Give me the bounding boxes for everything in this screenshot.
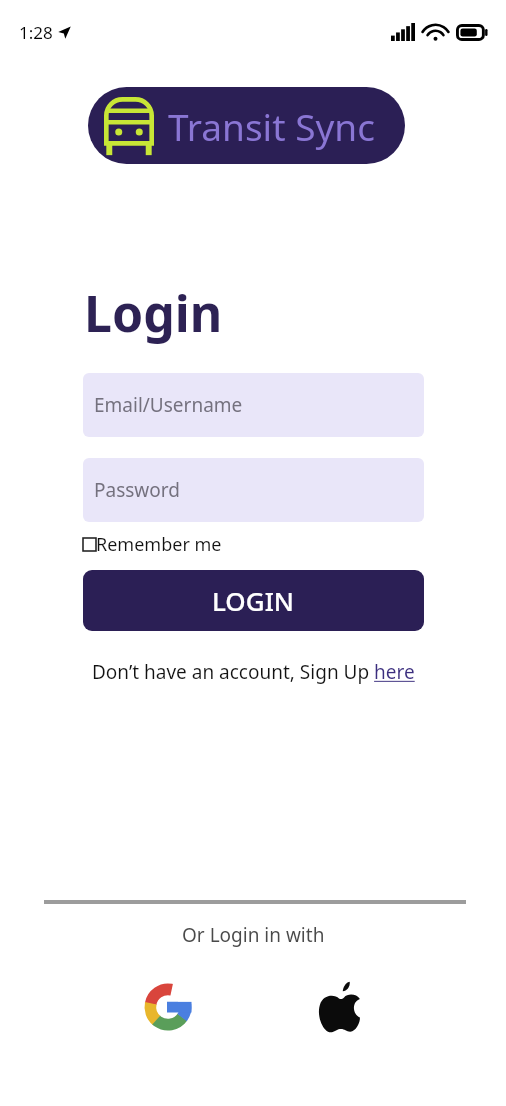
button[interactable]: Email/Username (83, 373, 424, 437)
staticText: Email/Username (94, 392, 243, 418)
button[interactable]: LOGIN (83, 570, 424, 631)
button[interactable]: Sign in with Google (131, 970, 205, 1044)
staticText: Transit Sync (168, 101, 375, 151)
staticText: Password (94, 477, 180, 503)
button[interactable]: Password (83, 458, 424, 522)
button[interactable]: Remember me (83, 532, 222, 557)
button[interactable]: Transit Sync (88, 87, 405, 164)
staticText: Or Login in with (182, 922, 325, 948)
staticText: 1:28 (19, 21, 53, 44)
button[interactable]: Don’t have an account, Sign Up here (92, 659, 415, 685)
staticText: Login (84, 279, 223, 347)
staticText: LOGIN (212, 583, 295, 618)
staticText: Remember me (96, 532, 222, 557)
staticText: Don’t have an account, Sign Up here (92, 659, 415, 685)
button[interactable]: Sign in with Apple (302, 970, 376, 1044)
